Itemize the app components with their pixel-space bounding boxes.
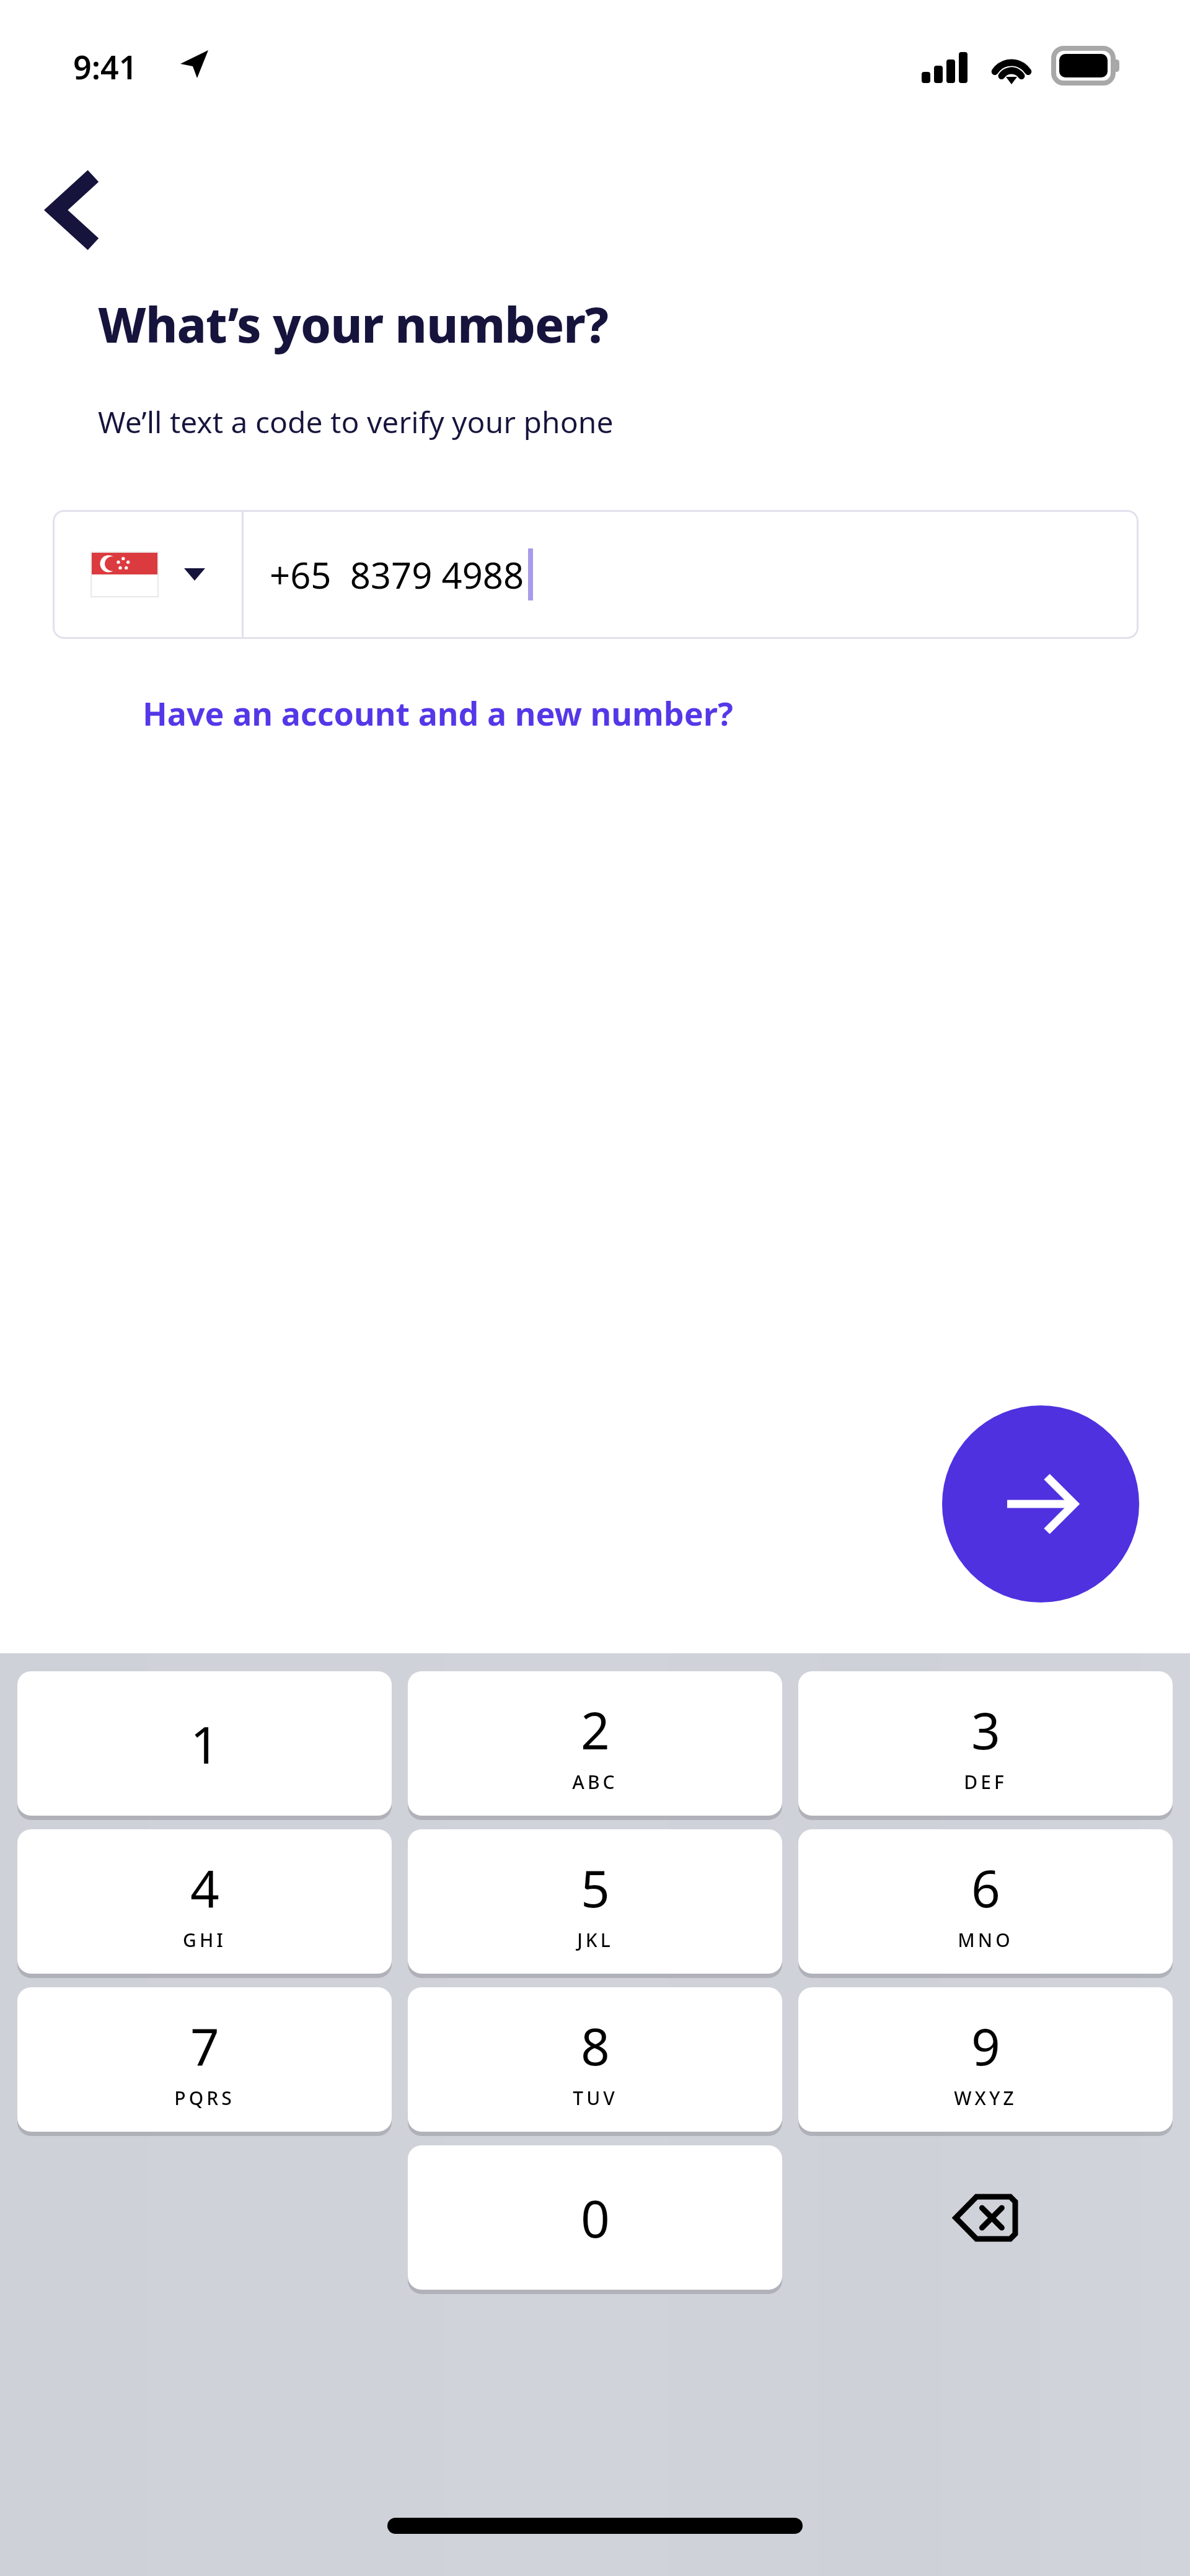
staticText: 8 (581, 2011, 610, 2080)
button[interactable]: +65 8379 4988 (244, 510, 1139, 639)
staticText: TUV (573, 2085, 618, 2111)
staticText: Have an account and a new number? (143, 691, 733, 735)
button[interactable]: 8 (408, 1987, 782, 2132)
button[interactable]: 6 (798, 1829, 1173, 1974)
staticText: DEF (964, 1769, 1007, 1795)
staticText: 2 (581, 1695, 610, 1764)
button[interactable]: 5 (408, 1829, 782, 1974)
staticText: PQRS (174, 2085, 235, 2111)
button[interactable]: 0 (408, 2145, 782, 2290)
button[interactable]: Have an account and a new number? (68, 675, 808, 750)
staticText: WXYZ (954, 2085, 1017, 2111)
staticText: GHI (183, 1927, 226, 1953)
staticText: 6 (971, 1853, 1000, 1922)
staticText: 1 (190, 1709, 219, 1778)
button[interactable]: 3 (798, 1671, 1173, 1816)
staticText: 5 (581, 1853, 610, 1922)
staticText: 4 (190, 1853, 219, 1922)
button[interactable]: Backspace (798, 2145, 1173, 2290)
staticText: ABC (572, 1769, 618, 1795)
staticText: We’ll text a code to verify your phone (98, 402, 614, 442)
button[interactable]: Select country code (53, 510, 242, 639)
button[interactable]: 1 (17, 1671, 392, 1816)
staticText: 3 (971, 1695, 1000, 1764)
staticText: +65 8379 4988 (270, 550, 524, 599)
button[interactable]: Continue (942, 1405, 1139, 1602)
staticText: 7 (190, 2011, 219, 2080)
button[interactable]: 9 (798, 1987, 1173, 2132)
button[interactable]: Back (37, 162, 130, 255)
staticText: MNO (958, 1927, 1013, 1953)
button[interactable]: 7 (17, 1987, 392, 2132)
button[interactable]: 4 (17, 1829, 392, 1974)
staticText: 0 (581, 2183, 610, 2253)
button[interactable]: 2 (408, 1671, 782, 1816)
staticText: 9 (971, 2011, 1000, 2080)
staticText: JKL (577, 1927, 614, 1953)
staticText: 9:41 (73, 45, 138, 89)
staticText: What’s your number? (98, 291, 609, 357)
